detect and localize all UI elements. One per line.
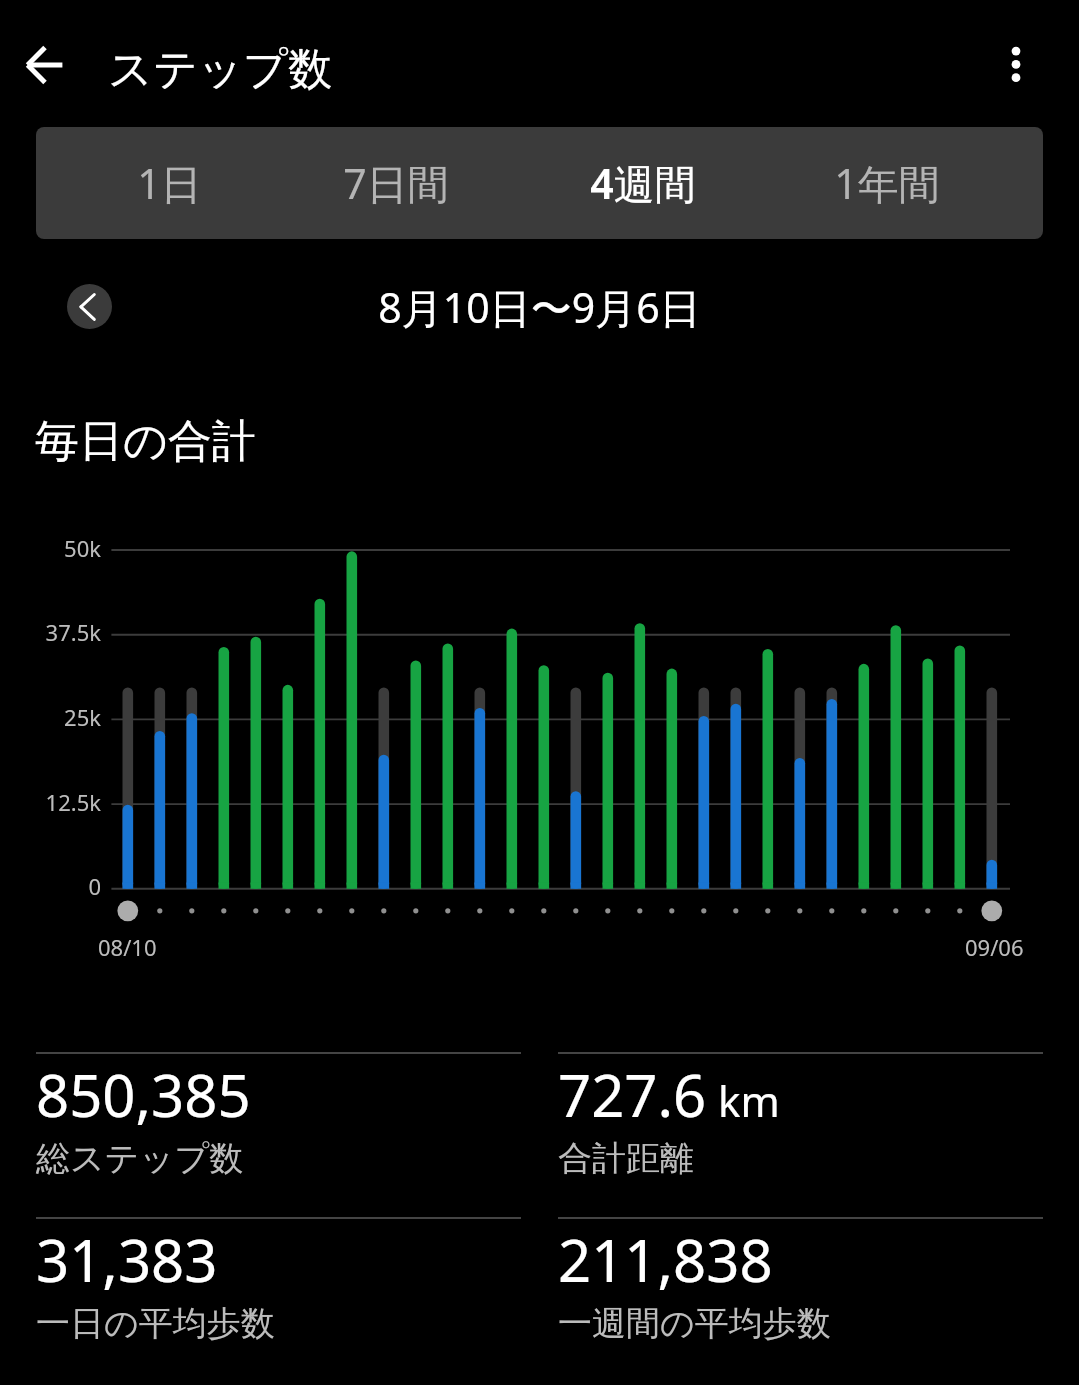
- staticText: 37.5k: [45, 617, 101, 647]
- staticText: 850,385: [36, 1055, 251, 1134]
- staticText: 0: [88, 871, 101, 901]
- button[interactable]: 31,383: [36, 1217, 521, 1367]
- button[interactable]: 1年間: [791, 127, 1043, 239]
- button[interactable]: 850,385: [36, 1052, 521, 1202]
- button[interactable]: 4週間: [540, 127, 792, 239]
- staticText: 09/06: [965, 932, 1024, 962]
- staticText: 総ステップ数: [36, 1137, 244, 1180]
- staticText: 7日間: [343, 155, 449, 211]
- button[interactable]: Previous period: [67, 284, 112, 329]
- staticText: 08/10: [98, 932, 157, 962]
- button[interactable]: More options: [975, 26, 1057, 108]
- staticText: 8月10日〜9月6日: [378, 279, 701, 335]
- staticText: 一週間の平均歩数: [558, 1302, 831, 1345]
- staticText: 合計距離: [558, 1137, 694, 1180]
- staticText: 211,838: [558, 1220, 773, 1299]
- staticText: 1年間: [834, 155, 940, 211]
- staticText: 31,383: [36, 1220, 218, 1299]
- staticText: 25k: [64, 702, 101, 732]
- staticText: km: [718, 1072, 780, 1129]
- button[interactable]: 1日: [36, 127, 288, 239]
- button[interactable]: 211,838: [558, 1217, 1043, 1367]
- button[interactable]: 7日間: [288, 127, 540, 239]
- staticText: 4週間: [590, 155, 696, 211]
- button[interactable]: 727.6: [558, 1052, 1043, 1202]
- staticText: 毎日の合計: [35, 414, 257, 469]
- staticText: 50k: [64, 533, 101, 563]
- staticText: ステップ数: [108, 42, 333, 97]
- staticText: 1日: [137, 155, 202, 211]
- staticText: 一日の平均歩数: [36, 1302, 275, 1345]
- staticText: 12.5k: [45, 787, 101, 817]
- button[interactable]: Back: [4, 24, 86, 106]
- staticText: 727.6: [558, 1055, 707, 1134]
